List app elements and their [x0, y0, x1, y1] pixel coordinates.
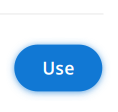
staticText: Use: [42, 56, 74, 79]
button[interactable]: Use: [14, 45, 102, 91]
